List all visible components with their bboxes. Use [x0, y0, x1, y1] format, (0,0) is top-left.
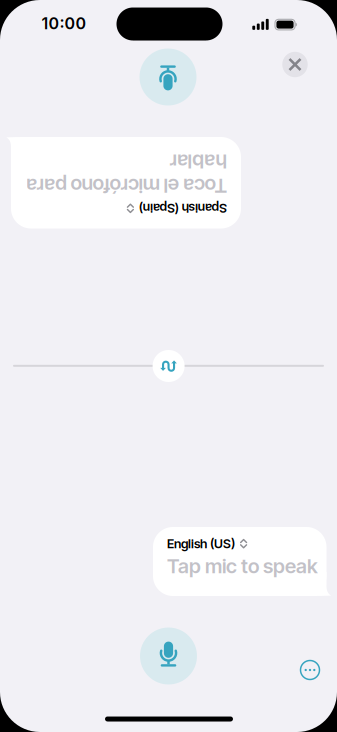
- button[interactable]: More options: [300, 660, 319, 679]
- button[interactable]: Spanish (Spain) language: [11, 137, 241, 228]
- staticText: Toca el micrófono para hablar: [25, 167, 226, 216]
- button[interactable]: Tap to speak (Spanish): [139, 48, 196, 105]
- staticText: Tap mic to speak: [167, 554, 318, 578]
- staticText: 10:00: [41, 14, 86, 33]
- staticText: English (US): [167, 536, 235, 551]
- button[interactable]: English (US) language: [153, 527, 326, 596]
- button[interactable]: Tap to speak (English): [140, 627, 197, 684]
- button[interactable]: Switch languages: [153, 350, 185, 382]
- button[interactable]: Close: [282, 52, 308, 77]
